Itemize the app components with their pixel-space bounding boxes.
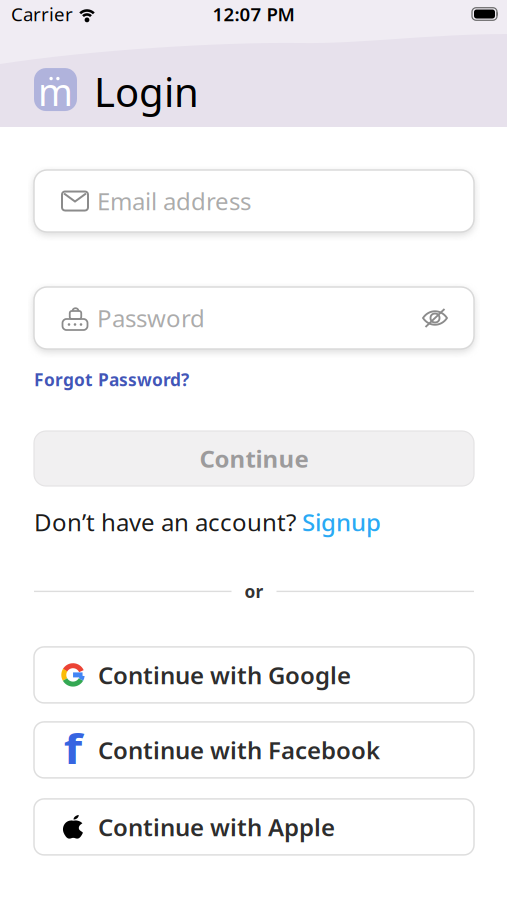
staticText: f bbox=[65, 720, 81, 775]
staticText: or bbox=[244, 580, 263, 603]
button[interactable]: Continue bbox=[34, 431, 474, 486]
staticText: Carrier bbox=[11, 2, 73, 26]
button[interactable]: f bbox=[34, 722, 474, 778]
staticText: Continue with Google bbox=[98, 659, 351, 691]
button[interactable]: Show password bbox=[422, 308, 448, 328]
staticText: Signup bbox=[302, 506, 381, 538]
button[interactable]: Signup bbox=[302, 506, 381, 538]
button[interactable]: Continue with Apple bbox=[34, 799, 474, 855]
button[interactable]: Continue with Google bbox=[34, 647, 474, 703]
staticText: Email address bbox=[97, 185, 251, 217]
staticText: Forgot Password? bbox=[34, 368, 189, 391]
staticText: Don’t have an account? bbox=[34, 506, 302, 538]
staticText: Continue with Facebook bbox=[98, 734, 380, 766]
staticText: 12:07 PM bbox=[212, 2, 294, 26]
button[interactable]: Email address bbox=[34, 170, 474, 232]
button[interactable]: Password bbox=[34, 287, 474, 349]
staticText: Continue bbox=[199, 443, 308, 474]
staticText: Password bbox=[97, 302, 205, 334]
staticText: Continue with Apple bbox=[98, 811, 335, 843]
staticText: m bbox=[38, 67, 73, 116]
button[interactable]: Forgot Password? bbox=[34, 368, 474, 391]
staticText: Login bbox=[94, 65, 199, 118]
